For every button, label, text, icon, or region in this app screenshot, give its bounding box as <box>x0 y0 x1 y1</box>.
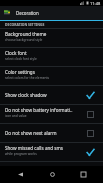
button[interactable]: Do not show battery informati.. <box>0 105 103 123</box>
staticText: Show missed calls and sms <box>5 145 64 151</box>
button[interactable]: Clock font <box>0 48 103 66</box>
staticText: select clock font style <box>5 57 37 61</box>
button[interactable]: Background theme <box>0 29 103 47</box>
button[interactable]: Back <box>8 166 32 183</box>
button[interactable]: Do not show next alarm <box>0 124 103 142</box>
staticText: 11:48 <box>90 1 101 6</box>
staticText: Background theme <box>5 31 47 37</box>
button[interactable]: Recent apps <box>71 166 95 183</box>
staticText: Decoration <box>16 10 39 16</box>
staticText: choose background style <box>5 38 43 42</box>
staticText: Do not show next alarm <box>5 130 57 136</box>
staticText: icon and value <box>5 114 27 118</box>
staticText: select colors for the elements <box>5 76 50 80</box>
staticText: DECORATION SETTINGS <box>5 22 45 27</box>
button[interactable]: Home <box>40 166 64 183</box>
staticText: Clock font <box>5 50 27 56</box>
button[interactable]: Color settings <box>0 67 103 85</box>
staticText: Color settings <box>5 69 35 75</box>
button[interactable]: Show clock shadow <box>0 86 103 104</box>
staticText: Do not show battery informati.. <box>5 107 73 113</box>
button[interactable]: Show missed calls and sms <box>0 143 103 161</box>
staticText: while program works <box>5 152 37 156</box>
staticText: Show clock shadow <box>5 92 47 98</box>
